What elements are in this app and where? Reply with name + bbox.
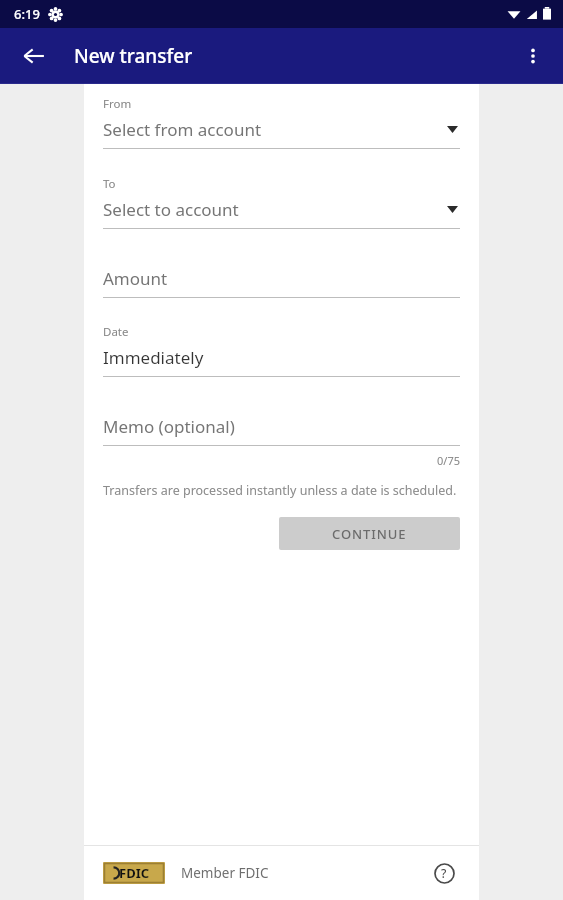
staticText: Select to account bbox=[103, 198, 239, 221]
staticText: Memo (optional) bbox=[103, 415, 235, 438]
staticText: Amount bbox=[103, 267, 168, 290]
button[interactable]: Select to account bbox=[103, 198, 460, 229]
button[interactable]: CONTINUE bbox=[279, 517, 460, 550]
staticText: Select from account bbox=[103, 118, 262, 141]
staticText: Transfers are processed instantly unless… bbox=[103, 482, 457, 499]
button[interactable]: Back bbox=[12, 34, 56, 78]
staticText: Immediately bbox=[103, 346, 204, 369]
staticText: ? bbox=[441, 865, 447, 881]
staticText: FDIC bbox=[119, 864, 150, 882]
staticText: 6:19 bbox=[14, 5, 40, 23]
staticText: Member FDIC bbox=[181, 864, 269, 882]
button[interactable]: Select from account bbox=[103, 118, 460, 149]
staticText: New transfer bbox=[74, 43, 193, 69]
staticText: From bbox=[103, 96, 132, 112]
button[interactable]: More options bbox=[511, 34, 555, 78]
staticText: To bbox=[103, 176, 116, 192]
button[interactable]: Help bbox=[428, 857, 460, 889]
button[interactable]: Memo (optional) bbox=[103, 415, 460, 446]
button[interactable]: Amount bbox=[103, 267, 460, 298]
staticText: Date bbox=[103, 324, 129, 340]
staticText: CONTINUE bbox=[332, 525, 407, 543]
staticText: 0/75 bbox=[437, 453, 460, 468]
button[interactable]: Immediately bbox=[103, 346, 460, 377]
